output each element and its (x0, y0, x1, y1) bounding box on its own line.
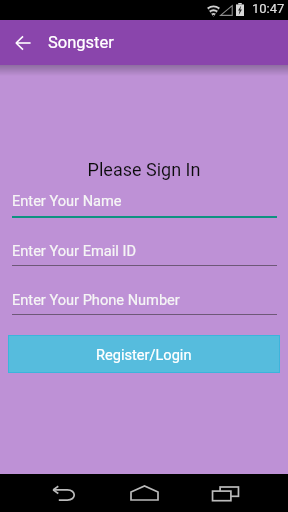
staticText: Please Sign In (0, 159, 288, 180)
button[interactable]: Back (32, 474, 96, 512)
staticText: Register/Login (96, 346, 192, 363)
staticText: Enter Your Phone Number (12, 291, 180, 308)
staticText: Enter Your Name (12, 192, 122, 209)
staticText: Songster (48, 33, 114, 52)
button[interactable]: Register/Login (9, 336, 279, 372)
staticText: Enter Your Email ID (12, 242, 136, 259)
button[interactable]: Home (112, 474, 176, 512)
staticText: 10:47 (252, 1, 285, 16)
button[interactable]: Recent apps (193, 474, 257, 512)
button[interactable]: Back (3, 20, 42, 65)
